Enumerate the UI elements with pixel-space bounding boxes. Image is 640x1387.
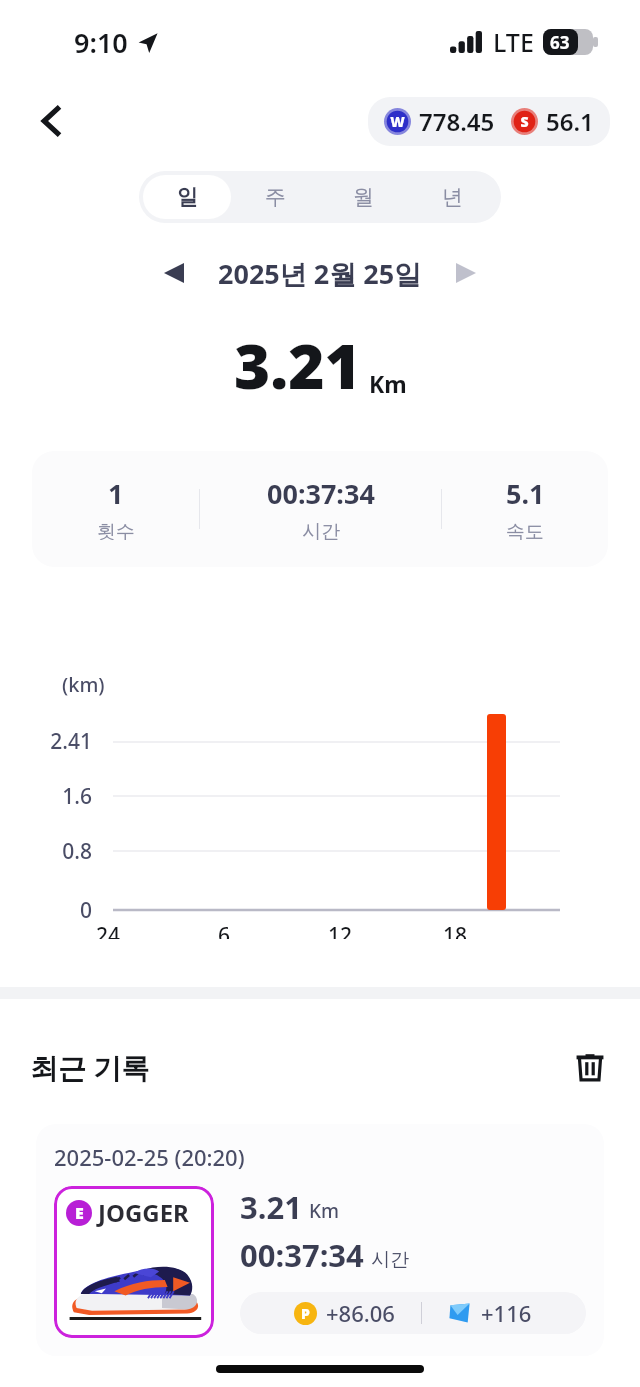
staticText: Km xyxy=(369,368,407,399)
button[interactable]: W xyxy=(368,97,610,146)
staticText: 횟수 xyxy=(97,520,135,544)
staticText: 00:37:34 xyxy=(267,475,375,512)
staticText: E xyxy=(75,1202,84,1224)
staticText: +86.06 xyxy=(326,1298,395,1328)
staticText: 24 xyxy=(96,921,121,939)
staticText: 일 xyxy=(177,184,198,210)
staticText: 3.21 xyxy=(234,323,361,407)
button[interactable]: 일 xyxy=(143,175,231,219)
staticText: 1.6 xyxy=(0,782,92,811)
staticText: 0 xyxy=(0,896,92,925)
button[interactable]: JOGGER shoe xyxy=(54,1186,214,1338)
button[interactable]: 년 xyxy=(408,175,497,219)
staticText: Km xyxy=(309,1198,340,1224)
staticText: 0.8 xyxy=(0,837,92,866)
staticText: 778.45 xyxy=(419,105,495,138)
staticText: 5.1 xyxy=(506,475,545,512)
staticText: +116 xyxy=(481,1298,532,1328)
staticText: 주 xyxy=(265,184,286,210)
staticText: 최근 기록 xyxy=(30,1048,150,1086)
staticText: 1 xyxy=(108,475,124,512)
staticText: LTE xyxy=(493,25,534,59)
staticText: JOGGER xyxy=(98,1196,189,1229)
staticText: 12 xyxy=(328,921,353,939)
staticText: 18 xyxy=(443,921,468,939)
button[interactable]: Delete records xyxy=(566,1043,614,1091)
staticText: 2025년 2월 25일 xyxy=(218,255,422,292)
staticText: 63 xyxy=(550,31,570,54)
staticText: 시간 xyxy=(371,1248,409,1272)
staticText: W xyxy=(390,112,405,131)
staticText: 2.41 xyxy=(0,727,92,756)
staticText: 2025-02-25 (20:20) xyxy=(54,1142,245,1172)
staticText: 속도 xyxy=(506,520,544,544)
staticText: S xyxy=(520,112,529,131)
button[interactable]: 2025-02-25 (20:20) xyxy=(36,1124,604,1356)
staticText: 56.1 xyxy=(546,105,594,138)
staticText: 3.21 xyxy=(240,1186,302,1228)
button[interactable]: Previous day xyxy=(152,251,196,295)
staticText: 년 xyxy=(442,184,463,210)
button[interactable]: Back xyxy=(24,93,80,149)
staticText: 00:37:34 xyxy=(240,1234,364,1276)
button[interactable]: 1 xyxy=(32,451,608,567)
button[interactable]: P xyxy=(240,1292,586,1334)
button[interactable]: 월 xyxy=(319,175,408,219)
staticText: (km) xyxy=(62,671,105,698)
staticText: 월 xyxy=(353,184,374,210)
staticText: 6 xyxy=(218,921,231,939)
staticText: 시간 xyxy=(302,520,340,544)
button[interactable]: 주 xyxy=(231,175,319,219)
staticText: P xyxy=(301,1304,310,1323)
staticText: 9:10 xyxy=(74,24,128,61)
button[interactable]: Next day xyxy=(444,251,488,295)
